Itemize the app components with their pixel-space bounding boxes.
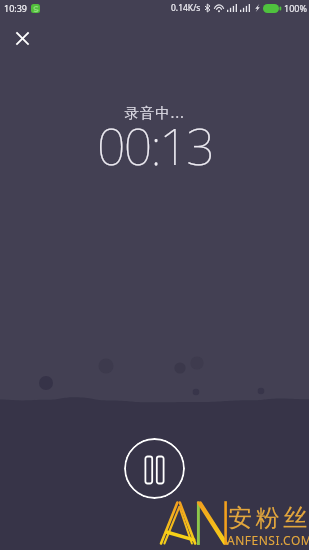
staticText: 录音中... (124, 102, 185, 122)
staticText: 00:13 (97, 112, 213, 180)
staticText: 安粉丝 (228, 503, 309, 533)
staticText: 10:39 (4, 2, 28, 14)
staticText: 100% (284, 2, 307, 14)
button[interactable]: Close (2, 18, 42, 58)
staticText: ANFENSI.COM (227, 532, 309, 548)
staticText: 0.14K/s (171, 2, 201, 14)
button[interactable]: Pause recording (124, 438, 185, 499)
